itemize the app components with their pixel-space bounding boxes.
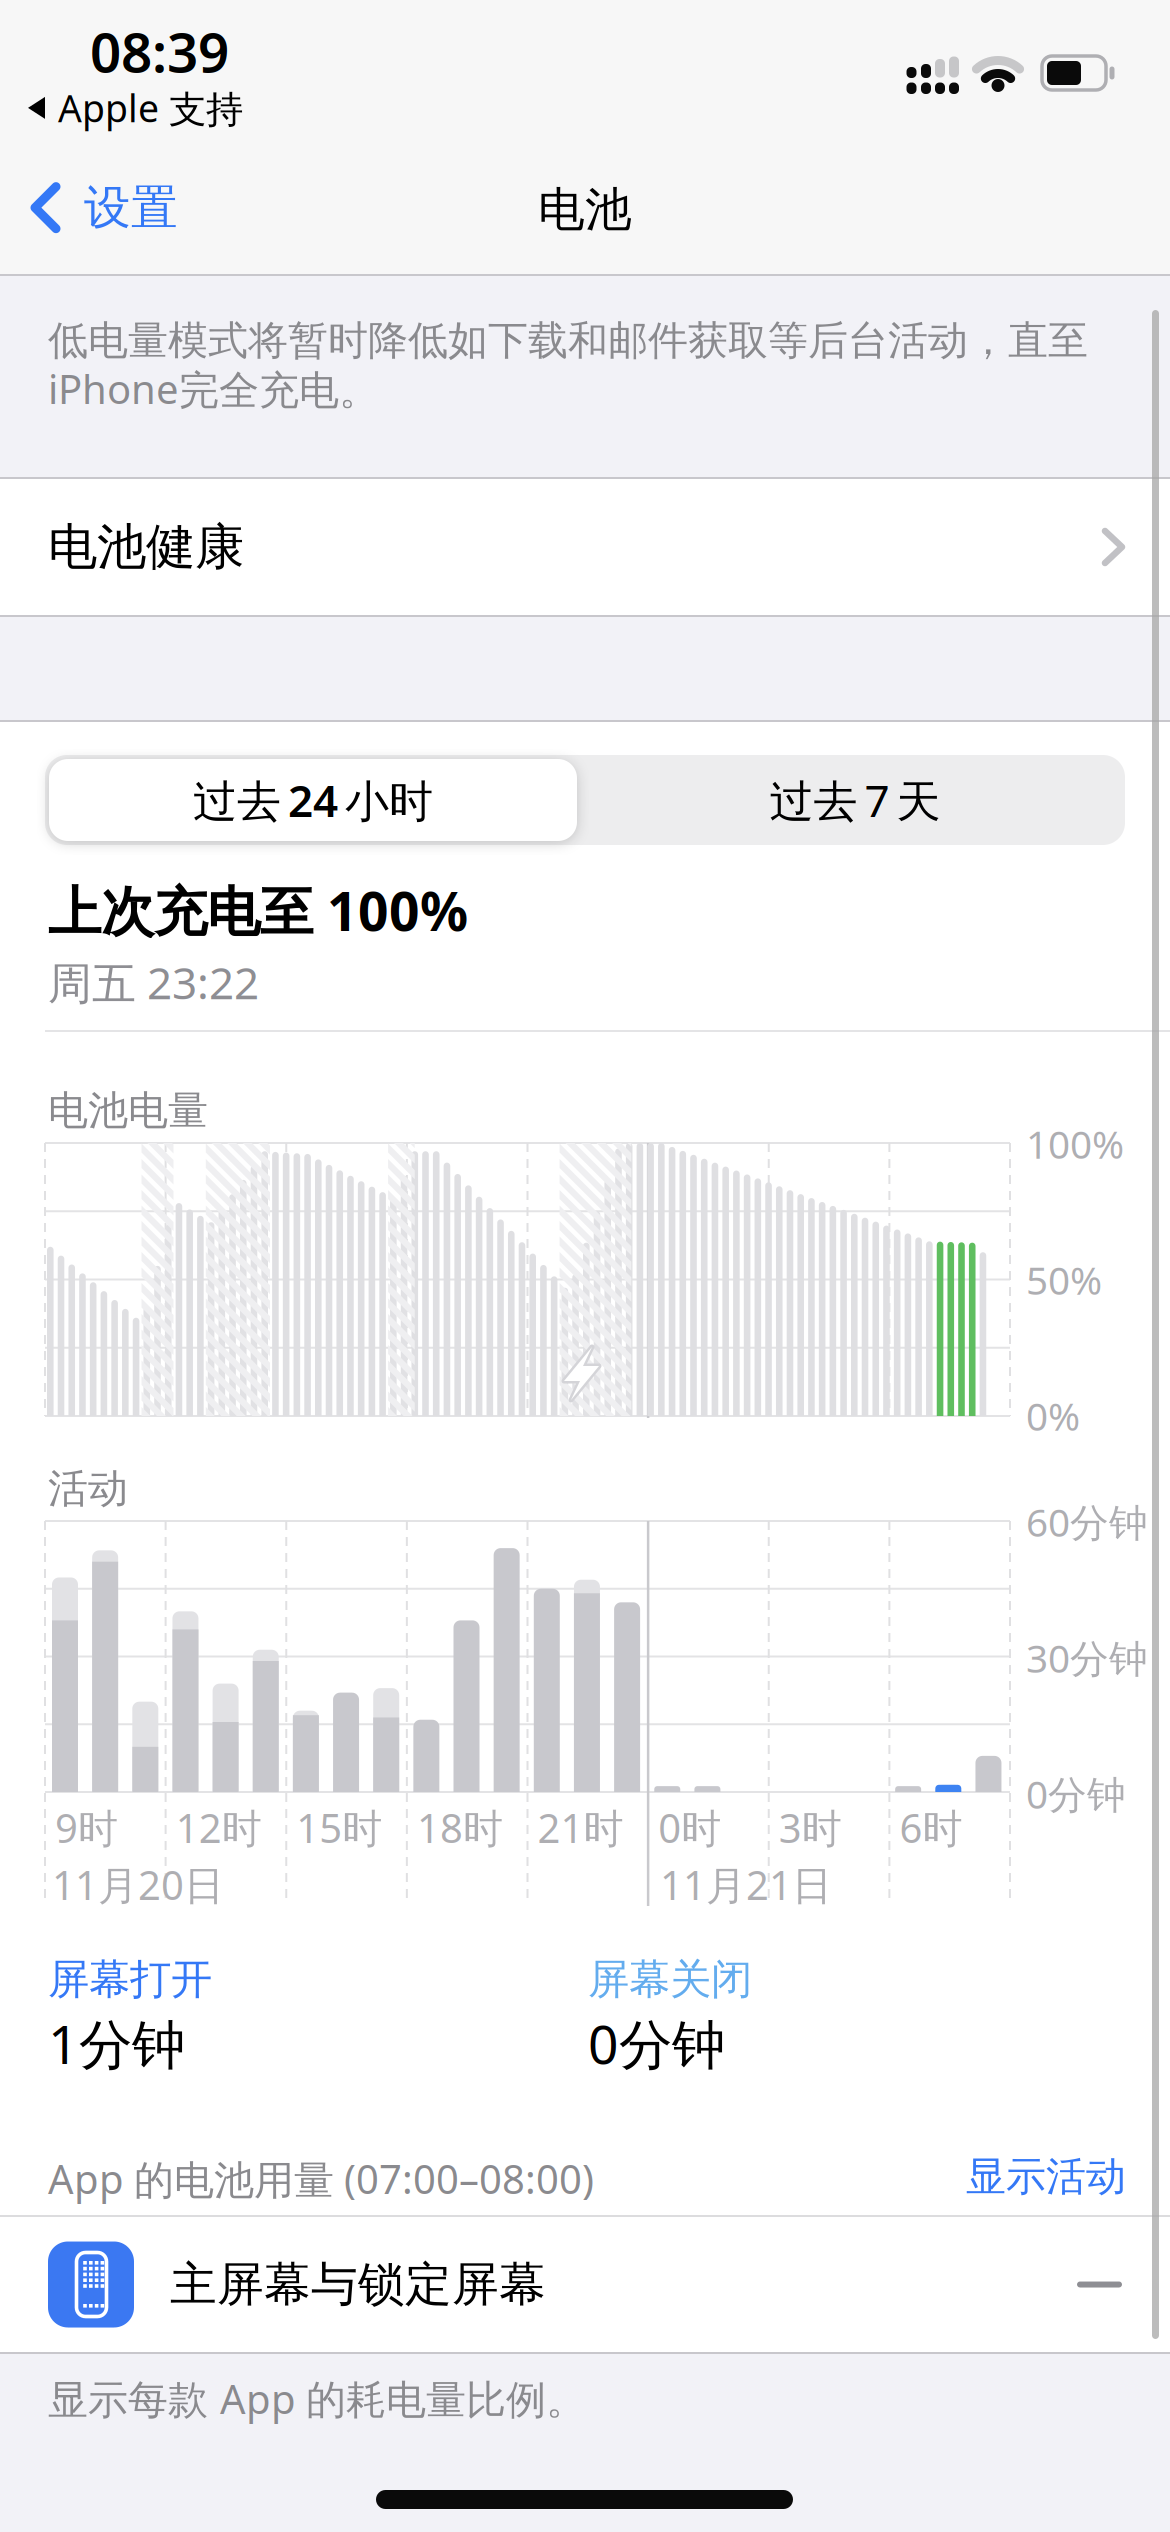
staticText: App 的电池用量 (07:00–08:00) [48,2152,594,2205]
staticText: 电池 [538,181,632,238]
staticText: 21时 [537,1801,623,1854]
button[interactable]: 返回 Apple 支持 [28,83,243,133]
staticText: 15时 [296,1801,382,1854]
staticText: 主屏幕与锁定屏幕 [170,2256,546,2313]
staticText: Apple 支持 [58,83,243,133]
staticText: 100% [1026,1118,1124,1169]
staticText: 6时 [899,1801,962,1854]
staticText: 9时 [55,1801,118,1854]
staticText: 60分钟 [1026,1496,1148,1547]
button[interactable]: 电池健康 [0,479,1170,615]
button[interactable]: 过去 24 小时 [49,759,577,841]
staticText: 50% [1026,1254,1102,1305]
staticText: 11月20日 [52,1858,224,1911]
staticText: 过去 7 天 [769,771,940,829]
button[interactable]: 过去 7 天 [585,755,1125,845]
staticText: 设置 [84,179,178,236]
button[interactable]: 主屏幕与锁定屏幕 [0,2217,1170,2352]
staticText: 1分钟 [48,2008,185,2079]
staticText: 11月21日 [660,1858,832,1911]
staticText: 电池电量 [48,1086,208,1135]
staticText: 显示活动 [966,2152,1126,2201]
staticText: 3时 [779,1801,842,1854]
staticText: 活动 [48,1464,128,1513]
staticText: 0分钟 [588,2008,725,2079]
staticText: 周五 23:22 [48,953,259,1011]
staticText: 18时 [417,1801,503,1854]
button[interactable]: 显示活动 [966,2152,1126,2201]
staticText: 屏幕关闭 [588,1954,752,2005]
staticText: 屏幕打开 [48,1954,212,2005]
staticText: 0分钟 [1026,1768,1126,1819]
staticText: 30分钟 [1026,1632,1148,1683]
staticText: 08:39 [90,15,229,88]
staticText: 低电量模式将暂时降低如下载和邮件获取等后台活动，直至 [48,316,1088,365]
staticText: 电池健康 [48,517,244,577]
staticText: iPhone完全充电。 [48,362,379,415]
staticText: 0时 [658,1801,721,1854]
staticText: 显示每款 App 的耗电量比例。 [48,2372,586,2425]
staticText: 0% [1026,1390,1080,1441]
staticText: 上次充电至 100% [48,875,468,946]
button[interactable]: 返回设置 [30,179,178,236]
staticText: 12时 [176,1801,262,1854]
staticText: 过去 24 小时 [193,771,433,829]
